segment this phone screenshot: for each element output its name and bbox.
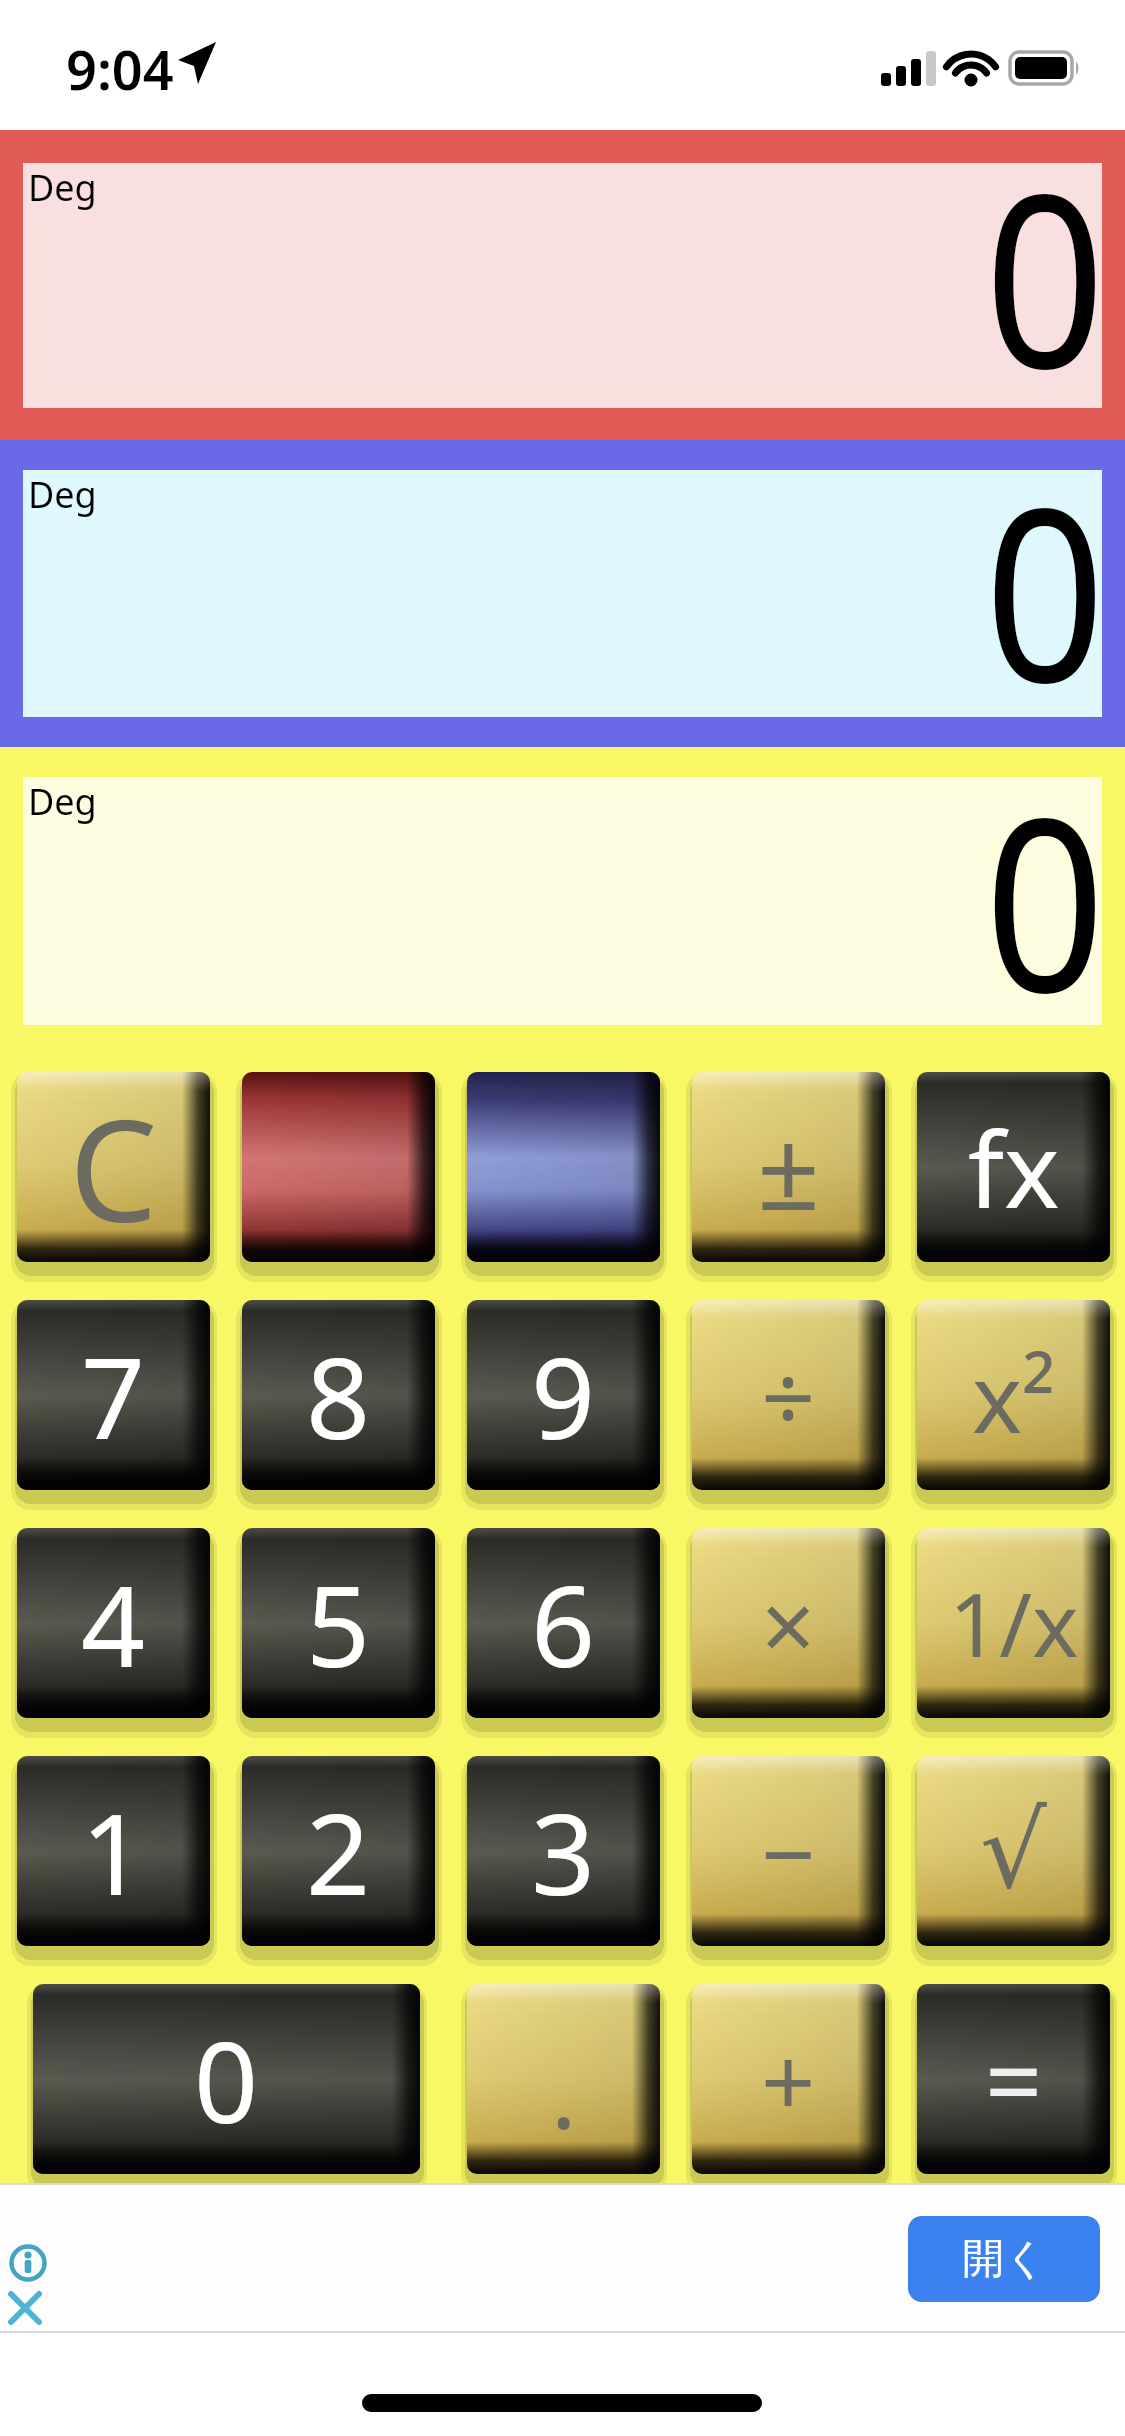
button[interactable]: × xyxy=(692,1528,885,1718)
staticText: 5 xyxy=(306,1547,371,1700)
button[interactable] xyxy=(242,1072,435,1262)
staticText: √ xyxy=(980,1790,1047,1912)
staticText: fx xyxy=(968,1096,1060,1239)
staticText: 0 xyxy=(985,111,1106,356)
staticText: C xyxy=(69,1072,158,1262)
staticText: × xyxy=(761,1559,816,1688)
staticText: x² xyxy=(972,1331,1056,1460)
staticText: 0 xyxy=(985,425,1106,672)
staticText: 3 xyxy=(531,1775,596,1928)
staticText: ± xyxy=(757,1092,820,1242)
button[interactable]: 8 xyxy=(242,1300,435,1490)
staticText: 7 xyxy=(81,1319,146,1472)
button[interactable]: 6 xyxy=(467,1528,660,1718)
button[interactable]: 1 xyxy=(17,1756,210,1946)
button[interactable]: − xyxy=(692,1756,885,1946)
button[interactable]: 9 xyxy=(467,1300,660,1490)
button[interactable]: 開く xyxy=(908,2216,1100,2302)
button[interactable]: + xyxy=(692,1984,885,2174)
button[interactable]: fx xyxy=(917,1072,1110,1262)
button[interactable]: √ xyxy=(917,1756,1110,1946)
staticText: 8 xyxy=(306,1319,371,1472)
button[interactable]: 1/x xyxy=(917,1528,1110,1718)
button[interactable] xyxy=(467,1072,660,1262)
button[interactable]: 0 xyxy=(33,1984,420,2174)
button[interactable]: ÷ xyxy=(692,1300,885,1490)
staticText: 1/x xyxy=(949,1563,1079,1683)
button[interactable]: 5 xyxy=(242,1528,435,1718)
staticText: ÷ xyxy=(761,1331,816,1460)
button[interactable]: 7 xyxy=(17,1300,210,1490)
staticText: Deg xyxy=(28,163,97,212)
staticText: Deg xyxy=(28,777,97,826)
staticText: Deg xyxy=(28,470,97,519)
staticText: 1 xyxy=(81,1775,146,1928)
button[interactable]: C xyxy=(17,1072,210,1262)
staticText: 6 xyxy=(531,1547,596,1700)
button[interactable]: 2 xyxy=(242,1756,435,1946)
button[interactable] xyxy=(10,2293,40,2323)
staticText: + xyxy=(761,2015,816,2144)
staticText: 0 xyxy=(194,2003,259,2156)
button[interactable]: = xyxy=(917,1984,1110,2174)
button[interactable]: x² xyxy=(917,1300,1110,1490)
staticText: 2 xyxy=(306,1775,371,1928)
staticText: 0 xyxy=(985,735,1106,983)
staticText: 開く xyxy=(962,2233,1047,2286)
button[interactable]: 4 xyxy=(17,1528,210,1718)
staticText: − xyxy=(761,1787,816,1916)
button[interactable] xyxy=(9,2244,47,2282)
button[interactable]: 3 xyxy=(467,1756,660,1946)
button[interactable]: . xyxy=(467,1984,660,2174)
staticText: . xyxy=(551,2027,577,2156)
staticText: 4 xyxy=(81,1547,146,1700)
staticText: 9 xyxy=(531,1319,596,1472)
button[interactable]: ± xyxy=(692,1072,885,1262)
staticText: 9:04 xyxy=(66,32,174,106)
staticText: = xyxy=(985,2011,1043,2147)
